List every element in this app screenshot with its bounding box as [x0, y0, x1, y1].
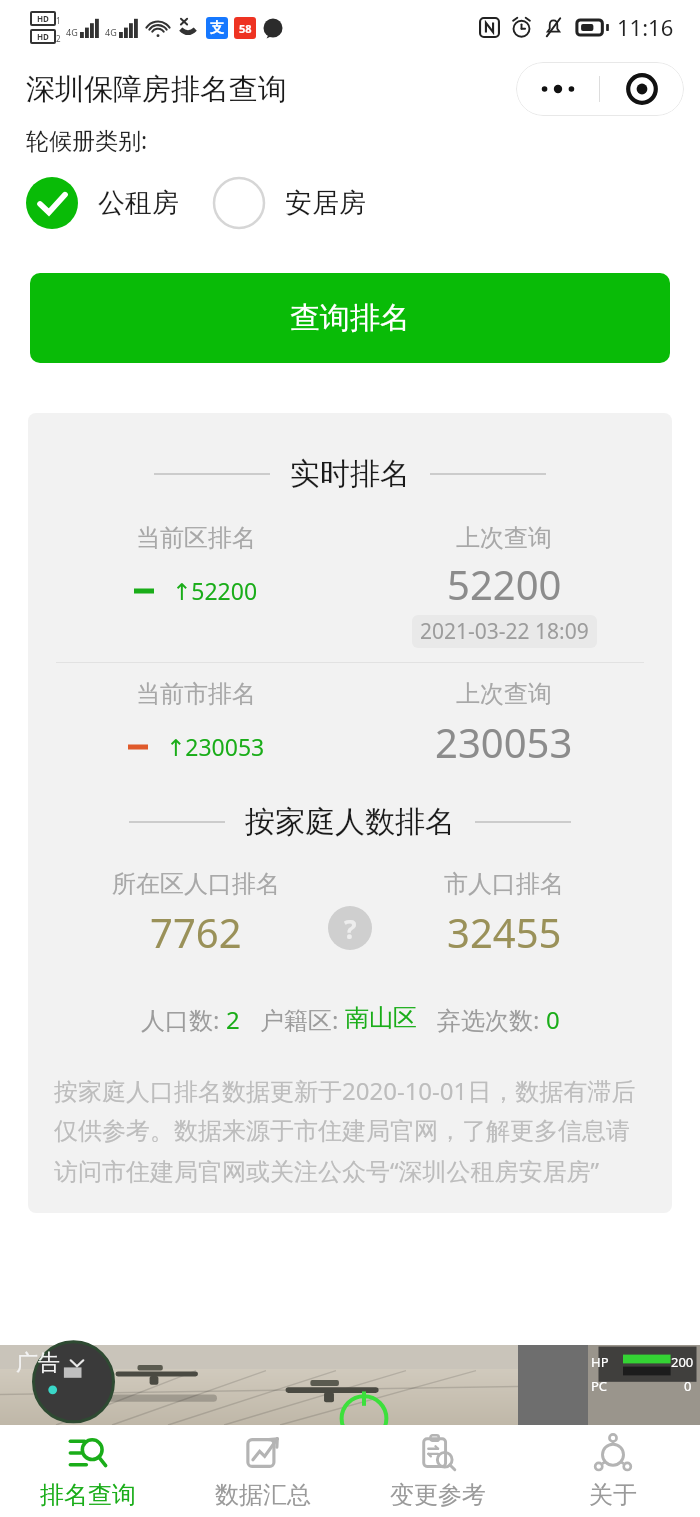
staticText: 人口数:: [141, 1003, 226, 1036]
button[interactable]: 数据汇总: [175, 1425, 350, 1517]
staticText: 32455: [447, 905, 562, 959]
staticText: 关于: [589, 1480, 637, 1510]
staticText: 支: [210, 19, 224, 37]
staticText: 实时排名: [290, 455, 410, 493]
staticText: 4G: [66, 26, 78, 38]
staticText: 查询排名: [290, 299, 410, 337]
staticText: 7762: [150, 905, 242, 959]
staticText: ↑230053: [166, 731, 265, 762]
staticText: ↑52200: [172, 575, 258, 606]
staticText: HP: [591, 1353, 609, 1371]
staticText: 52200: [447, 557, 562, 611]
staticText: 58: [239, 21, 252, 36]
button[interactable]: 关于: [525, 1425, 700, 1517]
button[interactable]: 变更参考: [350, 1425, 525, 1517]
staticText: 0: [546, 1003, 560, 1036]
staticText: 按家庭人数排名: [245, 803, 455, 841]
staticText: 0: [684, 1377, 692, 1395]
staticText: HD: [37, 31, 49, 42]
staticText: ?: [344, 911, 357, 946]
staticText: HD: [37, 13, 49, 24]
staticText: 所在区人口排名: [112, 869, 280, 899]
staticText: 广告: [16, 1349, 60, 1377]
staticText: 变更参考: [390, 1480, 486, 1510]
staticText: 当前市排名: [136, 679, 256, 709]
staticText: 2: [56, 33, 61, 44]
staticText: PC: [591, 1377, 608, 1395]
staticText: 1: [56, 15, 61, 26]
staticText: 上次查询: [456, 523, 552, 553]
staticText: 深圳保障房排名查询: [26, 71, 287, 108]
staticText: 数据汇总: [215, 1480, 311, 1510]
staticText: 11:16: [617, 12, 674, 42]
staticText: 230053: [435, 715, 573, 769]
staticText: 市人口排名: [444, 869, 564, 899]
staticText: 按家庭人口排名数据更新于2020-10-01日，数据有滞后仅供参考。数据来源于市…: [54, 1074, 646, 1187]
staticText: 2021-03-22 18:09: [420, 617, 589, 646]
staticText: 公租房: [98, 186, 179, 220]
staticText: 户籍区:: [260, 1003, 345, 1036]
button[interactable]: 安居房: [213, 177, 366, 229]
button[interactable]: 排名查询: [0, 1425, 175, 1517]
button[interactable]: Help: [328, 906, 372, 950]
staticText: 安居房: [285, 186, 366, 220]
staticText: 上次查询: [456, 679, 552, 709]
staticText: 2: [226, 1003, 240, 1036]
staticText: 4G: [105, 26, 117, 38]
button[interactable]: Close: [600, 62, 684, 116]
button[interactable]: 广告: [0, 1345, 700, 1425]
button[interactable]: More: [516, 62, 599, 116]
staticText: 排名查询: [40, 1480, 136, 1510]
staticText: 弃选次数:: [437, 1003, 546, 1036]
staticText: 南山区: [345, 1003, 417, 1033]
button[interactable]: 公租房: [26, 177, 179, 229]
staticText: 当前区排名: [136, 523, 256, 553]
button[interactable]: 查询排名: [30, 273, 670, 363]
staticText: 200: [671, 1353, 694, 1371]
staticText: 轮候册类别:: [26, 124, 148, 155]
